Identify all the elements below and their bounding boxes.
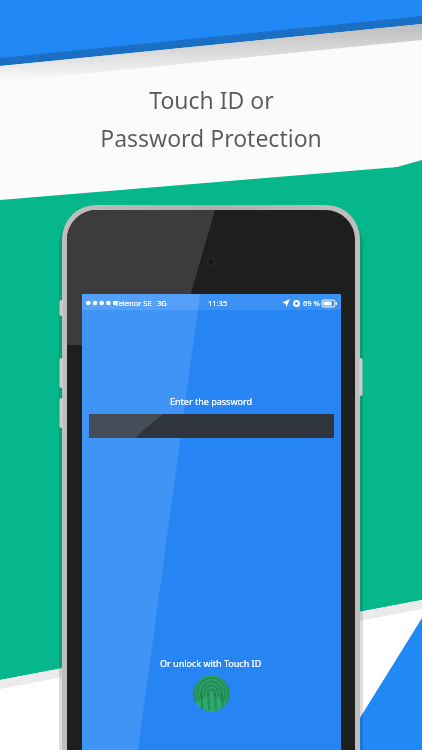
staticText: 11:35: [208, 298, 228, 308]
staticText: Touch ID or: [149, 84, 274, 115]
staticText: 3G: [157, 298, 167, 308]
button[interactable]: [89, 414, 334, 438]
staticText: Or unlock with Touch ID: [160, 657, 262, 669]
staticText: Enter the password: [170, 395, 252, 407]
staticText: Telenor SE: [115, 298, 152, 308]
button[interactable]: Unlock with Touch ID: [193, 675, 230, 712]
staticText: 69 %: [303, 298, 320, 308]
staticText: Password Protection: [100, 122, 322, 153]
